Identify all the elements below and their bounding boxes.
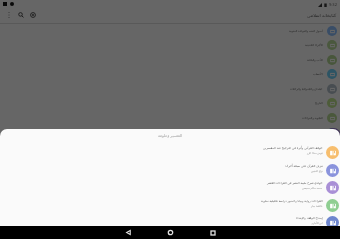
staticText: عائشة جبار [311,204,323,207]
staticText: کتابخانه اسلامی [307,12,337,18]
staticText: التاريخ [315,101,323,104]
staticText: نزاع العتيبي [311,169,323,172]
staticText: البلدان والجغرافيا والرحلات [290,87,323,91]
button[interactable]: إيضاح الوقف والإبتداء [0,213,340,231]
staticText: التفسير وعلومه [158,133,183,138]
button[interactable]: أصول الفقه والقواعد الفقهية [0,23,340,38]
staticText: القراءات رواية وبيانا وحضور دراسة تحليلي… [261,199,323,203]
button[interactable]: More options [3,9,15,21]
button[interactable]: Search [15,9,27,21]
button[interactable]: Add [326,128,340,143]
button[interactable]: القراءات رواية وبيانا وحضور دراسة تحليلي… [0,196,340,214]
button[interactable]: الأجزاء الحديثية [0,37,340,52]
staticText: الوقف القرآني وأثره في الترجيح عند المفس… [263,146,323,150]
staticText: الهادي شرح طيبة النشر في القراءات العشر [267,181,323,185]
staticText: التجويد والقراءات [302,116,323,120]
button[interactable]: الهادي شرح طيبة النشر في القراءات العشر [0,178,340,196]
staticText: إيضاح الوقف والإبتداء [296,216,323,220]
staticText: أصول الفقه والقواعد الفقهية [289,29,323,33]
staticText: الأنساب [313,72,323,75]
button[interactable]: Display settings [27,9,39,21]
button[interactable]: التجويد والقراءات [0,110,340,125]
button[interactable]: التاريخ [0,95,340,110]
staticText: عوض سناء الزر [307,151,323,154]
button[interactable]: Back [122,226,135,239]
staticText: محمد سالم محيسن [302,186,323,189]
staticText: 9:32 [329,2,337,7]
button[interactable]: تنزيل القرآن على سبعة أحرف [0,161,340,179]
button[interactable]: Recent apps [206,226,219,239]
button[interactable]: Home [164,226,177,239]
staticText: الأجزاء الحديثية [305,43,323,47]
staticText: ابن الأنباري [311,221,323,224]
staticText: الأدب والبلاغة [307,58,323,62]
button[interactable]: البلدان والجغرافيا والرحلات [0,81,340,96]
button[interactable]: الأنساب [0,66,340,81]
staticText: تنزيل القرآن على سبعة أحرف [285,164,323,168]
button[interactable]: الوقف القرآني وأثره في الترجيح عند المفس… [0,143,340,161]
button[interactable]: التفسير وعلومه [0,125,340,140]
button[interactable]: الأدب والبلاغة [0,52,340,67]
